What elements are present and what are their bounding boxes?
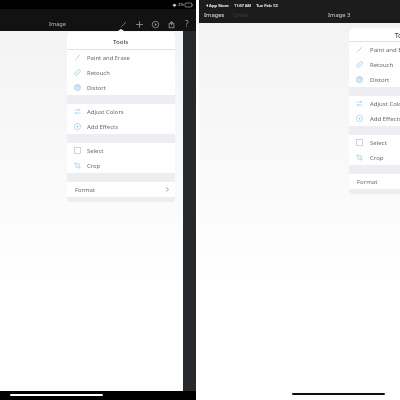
staticText: Adjust Colors xyxy=(87,108,124,116)
button[interactable]: Retouch xyxy=(67,65,175,80)
staticText: 2% xyxy=(178,2,184,8)
staticText: Paint and Erase xyxy=(87,54,130,62)
button[interactable]: Share xyxy=(163,15,179,33)
button[interactable]: Paint and Erase xyxy=(349,42,400,57)
staticText: Format xyxy=(357,178,378,186)
button[interactable]: Select xyxy=(67,143,175,158)
staticText: App Store xyxy=(209,2,229,8)
button[interactable]: Images xyxy=(204,11,225,19)
button[interactable]: Help xyxy=(179,15,195,33)
button[interactable]: Tools xyxy=(115,15,131,33)
button[interactable]: Distort xyxy=(349,72,400,87)
button[interactable]: Retouch xyxy=(349,57,400,72)
staticText: Retouch xyxy=(87,69,110,77)
button[interactable]: Format xyxy=(67,182,175,197)
staticText: Retouch xyxy=(370,61,394,69)
staticText: Add Effects xyxy=(370,115,400,123)
staticText: 11:57 AM xyxy=(234,3,251,8)
staticText: Select xyxy=(87,147,104,155)
staticText: Add Effects xyxy=(87,123,118,131)
staticText: Distort xyxy=(87,84,106,92)
button[interactable]: Paint and Erase xyxy=(67,50,175,65)
staticText: Crop xyxy=(370,154,384,162)
button[interactable]: Adjust Colors xyxy=(349,96,400,111)
staticText: Adjust Colors xyxy=(370,100,400,108)
button[interactable]: Insert xyxy=(131,15,147,33)
button[interactable]: Crop xyxy=(67,158,175,173)
staticText: Distort xyxy=(370,76,390,84)
staticText: Format xyxy=(75,186,95,194)
button[interactable]: Format xyxy=(349,174,400,189)
button[interactable]: Add Effects xyxy=(67,119,175,134)
staticText: Tools xyxy=(395,31,400,39)
button[interactable]: Add Effects xyxy=(349,111,400,126)
button[interactable]: Undo xyxy=(233,11,248,19)
button[interactable]: Distort xyxy=(67,80,175,95)
button[interactable]: Crop xyxy=(349,150,400,165)
button[interactable]: Play xyxy=(147,15,163,33)
button[interactable]: Adjust Colors xyxy=(67,104,175,119)
staticText: Image xyxy=(49,20,66,28)
staticText: ? xyxy=(185,18,189,30)
staticText: Tools xyxy=(113,37,129,45)
staticText: Tue Feb 12 xyxy=(256,2,278,8)
staticText: Select xyxy=(370,139,387,147)
button[interactable]: Select xyxy=(349,135,400,150)
staticText: Image 3 xyxy=(328,11,351,19)
staticText: Crop xyxy=(87,162,101,170)
staticText: Paint and Erase xyxy=(370,46,400,54)
